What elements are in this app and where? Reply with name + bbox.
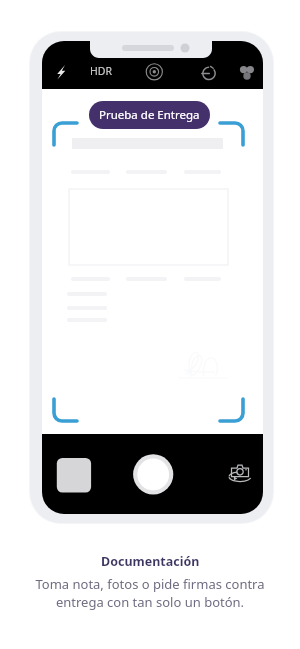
- staticText: HDR: [90, 64, 112, 78]
- button[interactable]: Gallery: [58, 459, 91, 492]
- button[interactable]: Prueba de Entrega: [89, 101, 210, 129]
- staticText: Documentación: [101, 553, 200, 570]
- staticText: Prueba de Entrega: [99, 107, 200, 123]
- button[interactable]: Timer: [197, 62, 217, 82]
- button[interactable]: HDR: [90, 64, 112, 78]
- button[interactable]: Focus: [144, 62, 164, 82]
- button[interactable]: Filters: [237, 62, 257, 82]
- button[interactable]: Switch camera: [231, 460, 261, 490]
- button[interactable]: Flash: [52, 62, 72, 82]
- button[interactable]: Shutter: [133, 456, 173, 496]
- staticText: Toma nota, fotos o pide firmas contra en…: [35, 575, 265, 611]
